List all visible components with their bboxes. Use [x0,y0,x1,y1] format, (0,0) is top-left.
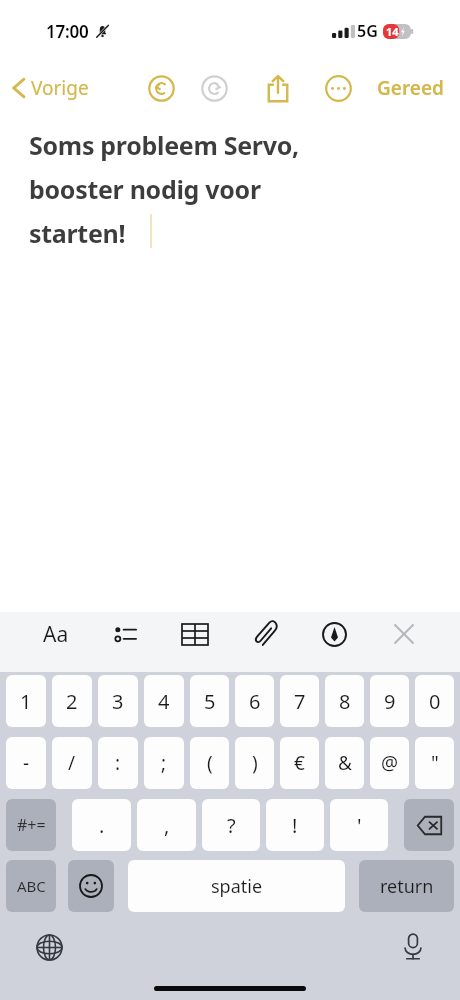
staticText: / [68,750,76,776]
staticText: 0 [429,688,441,715]
staticText: . [99,812,105,839]
button[interactable]: € [280,737,319,789]
staticText: 9 [384,688,396,715]
button[interactable]: , [137,799,196,851]
staticText: , [164,812,170,839]
button[interactable]: " [415,737,454,789]
button[interactable]: & [325,737,364,789]
button[interactable]: 9 [370,675,409,727]
staticText: Vorige [31,75,89,101]
button[interactable]: 5 [190,675,229,727]
button[interactable]: return [359,860,454,912]
button[interactable]: ABC [6,860,56,912]
staticText: 14 [386,24,399,39]
staticText: ? [227,812,236,839]
button[interactable]: spatie [128,860,345,912]
button[interactable]: Dictate [394,928,432,966]
button[interactable]: Attach [243,612,287,656]
staticText: 4 [158,688,170,715]
button[interactable]: / [52,737,92,789]
staticText: ! [292,812,298,839]
button[interactable]: ! [266,799,324,851]
button[interactable]: Table [173,612,217,656]
button[interactable]: ( [190,737,229,789]
staticText: 1 [20,688,32,715]
staticText: 3 [112,688,124,715]
staticText: 17:00 [46,20,89,43]
staticText: 5 [204,688,216,715]
staticText: @ [381,750,399,776]
staticText: Gereed [377,75,444,101]
staticText: Soms probleem Servo, booster nodig voor … [29,128,299,250]
button[interactable]: @ [370,737,409,789]
button[interactable]: . [72,799,131,851]
staticText: Aa [43,620,69,649]
button[interactable]: ? [202,799,260,851]
staticText: : [115,750,121,776]
staticText: - [23,750,30,776]
button[interactable]: 3 [98,675,138,727]
staticText: & [338,750,352,776]
button[interactable]: 7 [280,675,319,727]
button[interactable]: 2 [52,675,92,727]
staticText: return [380,874,434,899]
button[interactable]: 6 [235,675,274,727]
button[interactable]: ' [330,799,388,851]
staticText: 6 [249,688,261,715]
button[interactable]: Emoji [68,860,114,912]
staticText: 2 [66,688,78,715]
button[interactable]: Vorige [8,69,93,107]
button[interactable]: Backspace [404,799,454,851]
staticText: ' [357,812,362,839]
button[interactable]: 8 [325,675,364,727]
staticText: ( [207,750,213,776]
button[interactable]: 0 [415,675,454,727]
staticText: spatie [211,874,263,899]
button[interactable]: More [318,68,358,108]
button[interactable]: : [98,737,138,789]
button[interactable]: #+= [6,799,56,851]
button[interactable]: - [6,737,46,789]
staticText: ABC [17,876,46,896]
button[interactable]: Markup [312,612,356,656]
button[interactable]: Close keyboard [382,612,426,656]
button[interactable]: Share [258,68,298,108]
button[interactable]: Change keyboard [30,928,68,966]
button[interactable]: Text format [34,612,78,656]
staticText: 8 [339,688,351,715]
staticText: ; [161,750,167,776]
button[interactable]: ) [235,737,274,789]
button[interactable]: Undo [141,68,181,108]
button[interactable]: Redo [194,68,234,108]
staticText: " [431,750,439,776]
button[interactable]: 4 [144,675,184,727]
button[interactable]: ; [144,737,184,789]
staticText: € [294,750,305,776]
staticText: 5G [357,20,378,42]
button[interactable]: 1 [6,675,46,727]
button[interactable]: Checklist [104,612,148,656]
staticText: 7 [294,688,306,715]
staticText: #+= [17,814,46,836]
staticText: ) [252,750,258,776]
button[interactable]: Gereed [371,69,450,107]
